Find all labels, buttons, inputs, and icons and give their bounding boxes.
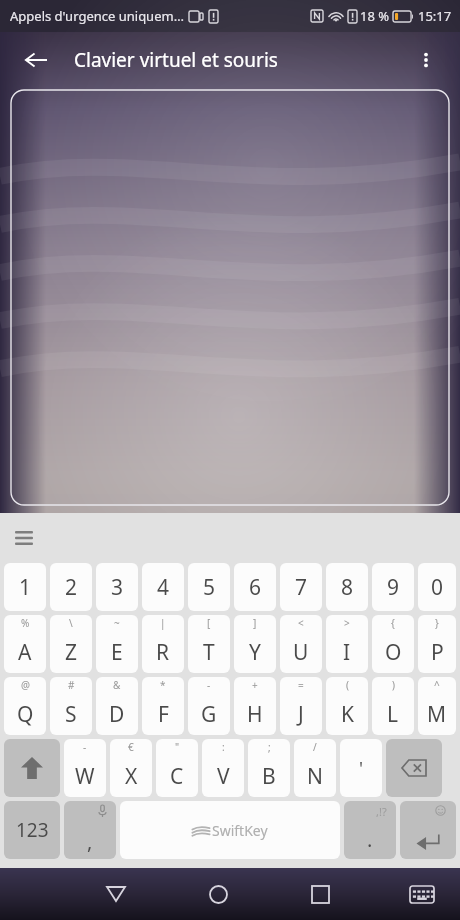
- button[interactable]: *: [142, 677, 184, 735]
- button[interactable]: ": [156, 739, 198, 797]
- button[interactable]: Entrée: [400, 801, 456, 859]
- button[interactable]: #: [50, 677, 92, 735]
- staticText: 3: [111, 573, 124, 602]
- staticText: .: [367, 826, 373, 853]
- staticText: #: [68, 678, 75, 692]
- button[interactable]: 0: [418, 563, 456, 611]
- staticText: Y: [249, 638, 261, 667]
- staticText: <: [298, 616, 304, 630]
- staticText: 6: [249, 573, 262, 602]
- button[interactable]: 7: [280, 563, 322, 611]
- button[interactable]: Majuscule: [4, 739, 60, 797]
- staticText: W: [75, 762, 95, 791]
- staticText: ,!?: [376, 804, 387, 819]
- staticText: €: [128, 740, 134, 754]
- staticText: &: [113, 678, 121, 692]
- button[interactable]: ^: [418, 677, 456, 735]
- button[interactable]: (: [326, 677, 368, 735]
- staticText: D: [109, 700, 125, 729]
- button[interactable]: 123: [4, 801, 60, 859]
- button[interactable]: <: [280, 615, 322, 673]
- button[interactable]: Virgule, micro: [64, 801, 116, 859]
- staticText: I: [343, 638, 351, 667]
- button[interactable]: Plus d'options: [404, 38, 448, 82]
- staticText: ,: [87, 828, 93, 855]
- button[interactable]: ;: [248, 739, 290, 797]
- button[interactable]: ): [372, 677, 414, 735]
- staticText: ;: [268, 740, 271, 754]
- staticText: T: [203, 638, 215, 667]
- staticText: -: [83, 740, 87, 754]
- button[interactable]: Pavé tactile: [11, 90, 449, 505]
- button[interactable]: Menu du clavier: [6, 520, 42, 556]
- staticText: A: [18, 638, 32, 667]
- staticText: ^: [434, 678, 440, 692]
- button[interactable]: 1: [4, 563, 46, 611]
- staticText: ): [392, 678, 395, 692]
- staticText: \: [69, 616, 73, 630]
- staticText: [: [207, 616, 211, 630]
- staticText: =: [298, 678, 304, 692]
- staticText: B: [262, 762, 276, 791]
- staticText: :: [222, 740, 225, 754]
- staticText: M: [427, 700, 447, 729]
- staticText: Clavier virtuel et souris: [74, 47, 278, 73]
- button[interactable]: 5: [188, 563, 230, 611]
- staticText: @: [21, 678, 30, 692]
- staticText: F: [158, 700, 169, 729]
- staticText: ': [359, 756, 364, 781]
- staticText: K: [341, 700, 354, 729]
- button[interactable]: Point, ponctuation: [344, 801, 396, 859]
- button[interactable]: Changer de clavier: [396, 868, 448, 920]
- button[interactable]: ]: [234, 615, 276, 673]
- button[interactable]: Supprimer: [386, 739, 442, 797]
- staticText: 18 %: [360, 7, 390, 25]
- button[interactable]: &: [96, 677, 138, 735]
- button[interactable]: {: [372, 615, 414, 673]
- staticText: (: [346, 678, 349, 692]
- button[interactable]: -: [64, 739, 106, 797]
- button[interactable]: \: [50, 615, 92, 673]
- button[interactable]: €: [110, 739, 152, 797]
- button[interactable]: 6: [234, 563, 276, 611]
- staticText: 15:17: [418, 7, 452, 25]
- staticText: 123: [16, 817, 49, 843]
- staticText: 0: [431, 573, 444, 602]
- staticText: P: [431, 638, 444, 667]
- button[interactable]: /: [294, 739, 336, 797]
- button[interactable]: 8: [326, 563, 368, 611]
- staticText: >: [344, 616, 350, 630]
- staticText: S: [65, 700, 77, 729]
- button[interactable]: 4: [142, 563, 184, 611]
- button[interactable]: Espace: [120, 801, 340, 859]
- button[interactable]: -: [188, 677, 230, 735]
- button[interactable]: ~: [96, 615, 138, 673]
- staticText: }: [435, 616, 439, 630]
- button[interactable]: Retour: [14, 38, 58, 82]
- button[interactable]: =: [280, 677, 322, 735]
- staticText: O: [385, 638, 402, 667]
- button[interactable]: 9: [372, 563, 414, 611]
- staticText: 5: [203, 573, 216, 602]
- button[interactable]: ': [340, 739, 382, 797]
- button[interactable]: Masquer le clavier: [90, 868, 142, 920]
- staticText: Appels d'urgence uniquem…: [10, 7, 184, 25]
- staticText: R: [156, 638, 170, 667]
- button[interactable]: >: [326, 615, 368, 673]
- button[interactable]: }: [418, 615, 456, 673]
- button[interactable]: [: [188, 615, 230, 673]
- button[interactable]: |: [142, 615, 184, 673]
- button[interactable]: @: [4, 677, 46, 735]
- staticText: H: [247, 700, 263, 729]
- button[interactable]: Accueil: [192, 868, 244, 920]
- button[interactable]: 3: [96, 563, 138, 611]
- button[interactable]: %: [4, 615, 46, 673]
- button[interactable]: 2: [50, 563, 92, 611]
- button[interactable]: +: [234, 677, 276, 735]
- staticText: 8: [341, 573, 354, 602]
- staticText: J: [298, 700, 304, 729]
- button[interactable]: Applications récentes: [294, 868, 346, 920]
- staticText: ~: [114, 616, 120, 630]
- staticText: C: [170, 762, 184, 791]
- button[interactable]: :: [202, 739, 244, 797]
